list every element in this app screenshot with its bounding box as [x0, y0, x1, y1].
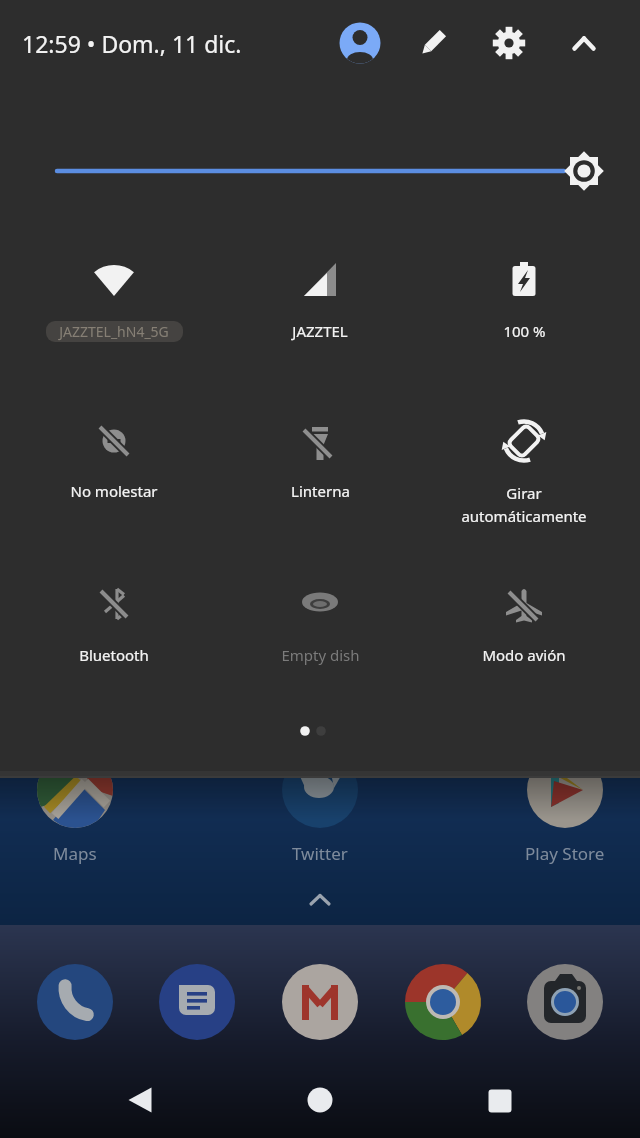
button[interactable] — [250, 245, 390, 355]
button[interactable] — [96, 1068, 184, 1132]
staticText: Modo avión — [482, 645, 566, 665]
button[interactable] — [40, 146, 600, 196]
button[interactable] — [250, 405, 390, 515]
button[interactable] — [527, 964, 603, 1040]
button[interactable] — [454, 568, 594, 678]
staticText: JAZZTEL — [292, 321, 348, 341]
button[interactable] — [282, 752, 358, 864]
button[interactable] — [300, 880, 340, 920]
button[interactable] — [44, 568, 184, 678]
button[interactable] — [250, 568, 390, 678]
button[interactable] — [282, 964, 358, 1040]
staticText: 12:59 • Dom., 11 dic. — [22, 28, 242, 59]
button[interactable] — [159, 964, 235, 1040]
button[interactable] — [44, 245, 184, 355]
staticText: Maps — [53, 842, 97, 865]
button[interactable] — [489, 23, 529, 63]
staticText: Linterna — [291, 481, 350, 501]
button[interactable] — [37, 752, 113, 864]
button[interactable] — [527, 752, 603, 864]
button[interactable] — [340, 23, 380, 63]
button[interactable] — [405, 964, 481, 1040]
staticText: JAZZTEL_hN4_5G — [59, 322, 169, 341]
button[interactable] — [37, 964, 113, 1040]
staticText: Girar automáticamente — [461, 483, 587, 526]
button[interactable] — [456, 1068, 544, 1132]
staticText: Empty dish — [281, 645, 360, 665]
staticText: 100 % — [503, 321, 546, 341]
staticText: No molestar — [70, 481, 158, 501]
button[interactable] — [454, 245, 594, 355]
button[interactable] — [413, 23, 453, 63]
staticText: Play Store — [525, 842, 605, 865]
button[interactable] — [454, 405, 594, 515]
button[interactable] — [44, 405, 184, 515]
button[interactable] — [564, 24, 604, 64]
staticText: Twitter — [292, 842, 348, 865]
staticText: Bluetooth — [79, 645, 149, 665]
button[interactable] — [276, 1068, 364, 1132]
